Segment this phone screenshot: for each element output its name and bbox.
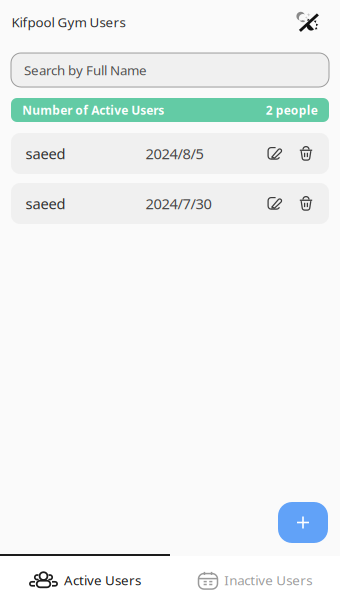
staticText: Kifpool Gym Users bbox=[11, 13, 125, 31]
button[interactable]: Toggle appearance bbox=[297, 10, 321, 34]
staticText: 2024/7/30 bbox=[145, 194, 211, 213]
button[interactable]: Search by Full Name bbox=[11, 53, 329, 87]
button[interactable]: Active Users bbox=[0, 556, 170, 604]
staticText: 2 people bbox=[266, 102, 318, 118]
staticText: Search by Full Name bbox=[24, 61, 147, 79]
button[interactable]: saeed bbox=[11, 183, 329, 224]
staticText: Inactive Users bbox=[224, 571, 312, 589]
staticText: saeed bbox=[25, 194, 65, 213]
staticText: Active Users bbox=[64, 571, 141, 589]
button[interactable]: saeed bbox=[11, 133, 329, 174]
staticText: 2024/8/5 bbox=[145, 144, 203, 163]
button[interactable]: Add user bbox=[278, 502, 328, 543]
button[interactable]: Inactive Users bbox=[170, 556, 340, 604]
staticText: Number of Active Users bbox=[22, 102, 164, 118]
staticText: saeed bbox=[25, 144, 65, 163]
